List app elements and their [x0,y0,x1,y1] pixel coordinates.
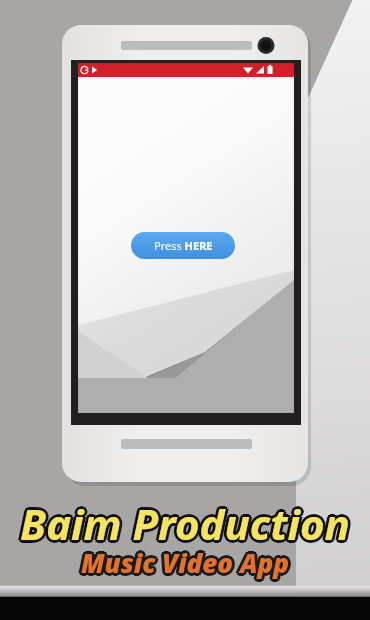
staticText: Baim Production [0,492,370,620]
staticText: Music Video App [0,545,370,620]
staticText: Baim Production [0,493,370,620]
staticText: Press HERE [154,238,213,253]
staticText: Baim Production [2,497,370,620]
button[interactable]: Press HERE [131,232,235,259]
staticText: Baim Production [0,497,368,620]
staticText: Baim Production [0,495,367,620]
staticText: Music Video App [0,547,368,620]
staticText: Music Video App [3,545,370,620]
staticText: Baim Production [0,493,368,620]
staticText: Baim Production [0,497,370,620]
staticText: Baim Production [0,495,368,620]
staticText: Baim Production [3,495,370,620]
staticText: Music Video App [0,543,370,620]
staticText: Music Video App [2,547,370,620]
staticText: Baim Production [2,495,370,620]
staticText: Baim Production [2,493,370,620]
staticText: Music Video App [2,545,370,620]
staticText: Music Video App [0,547,370,620]
staticText: Baim Production [0,498,370,620]
staticText: Baim Production [0,495,370,620]
staticText: Music Video App [0,545,368,620]
staticText: Music Video App [0,545,367,620]
staticText: Music Video App [2,543,370,620]
staticText: Music Video App [0,543,368,620]
staticText: Music Video App [0,542,370,620]
staticText: Music Video App [0,548,370,620]
